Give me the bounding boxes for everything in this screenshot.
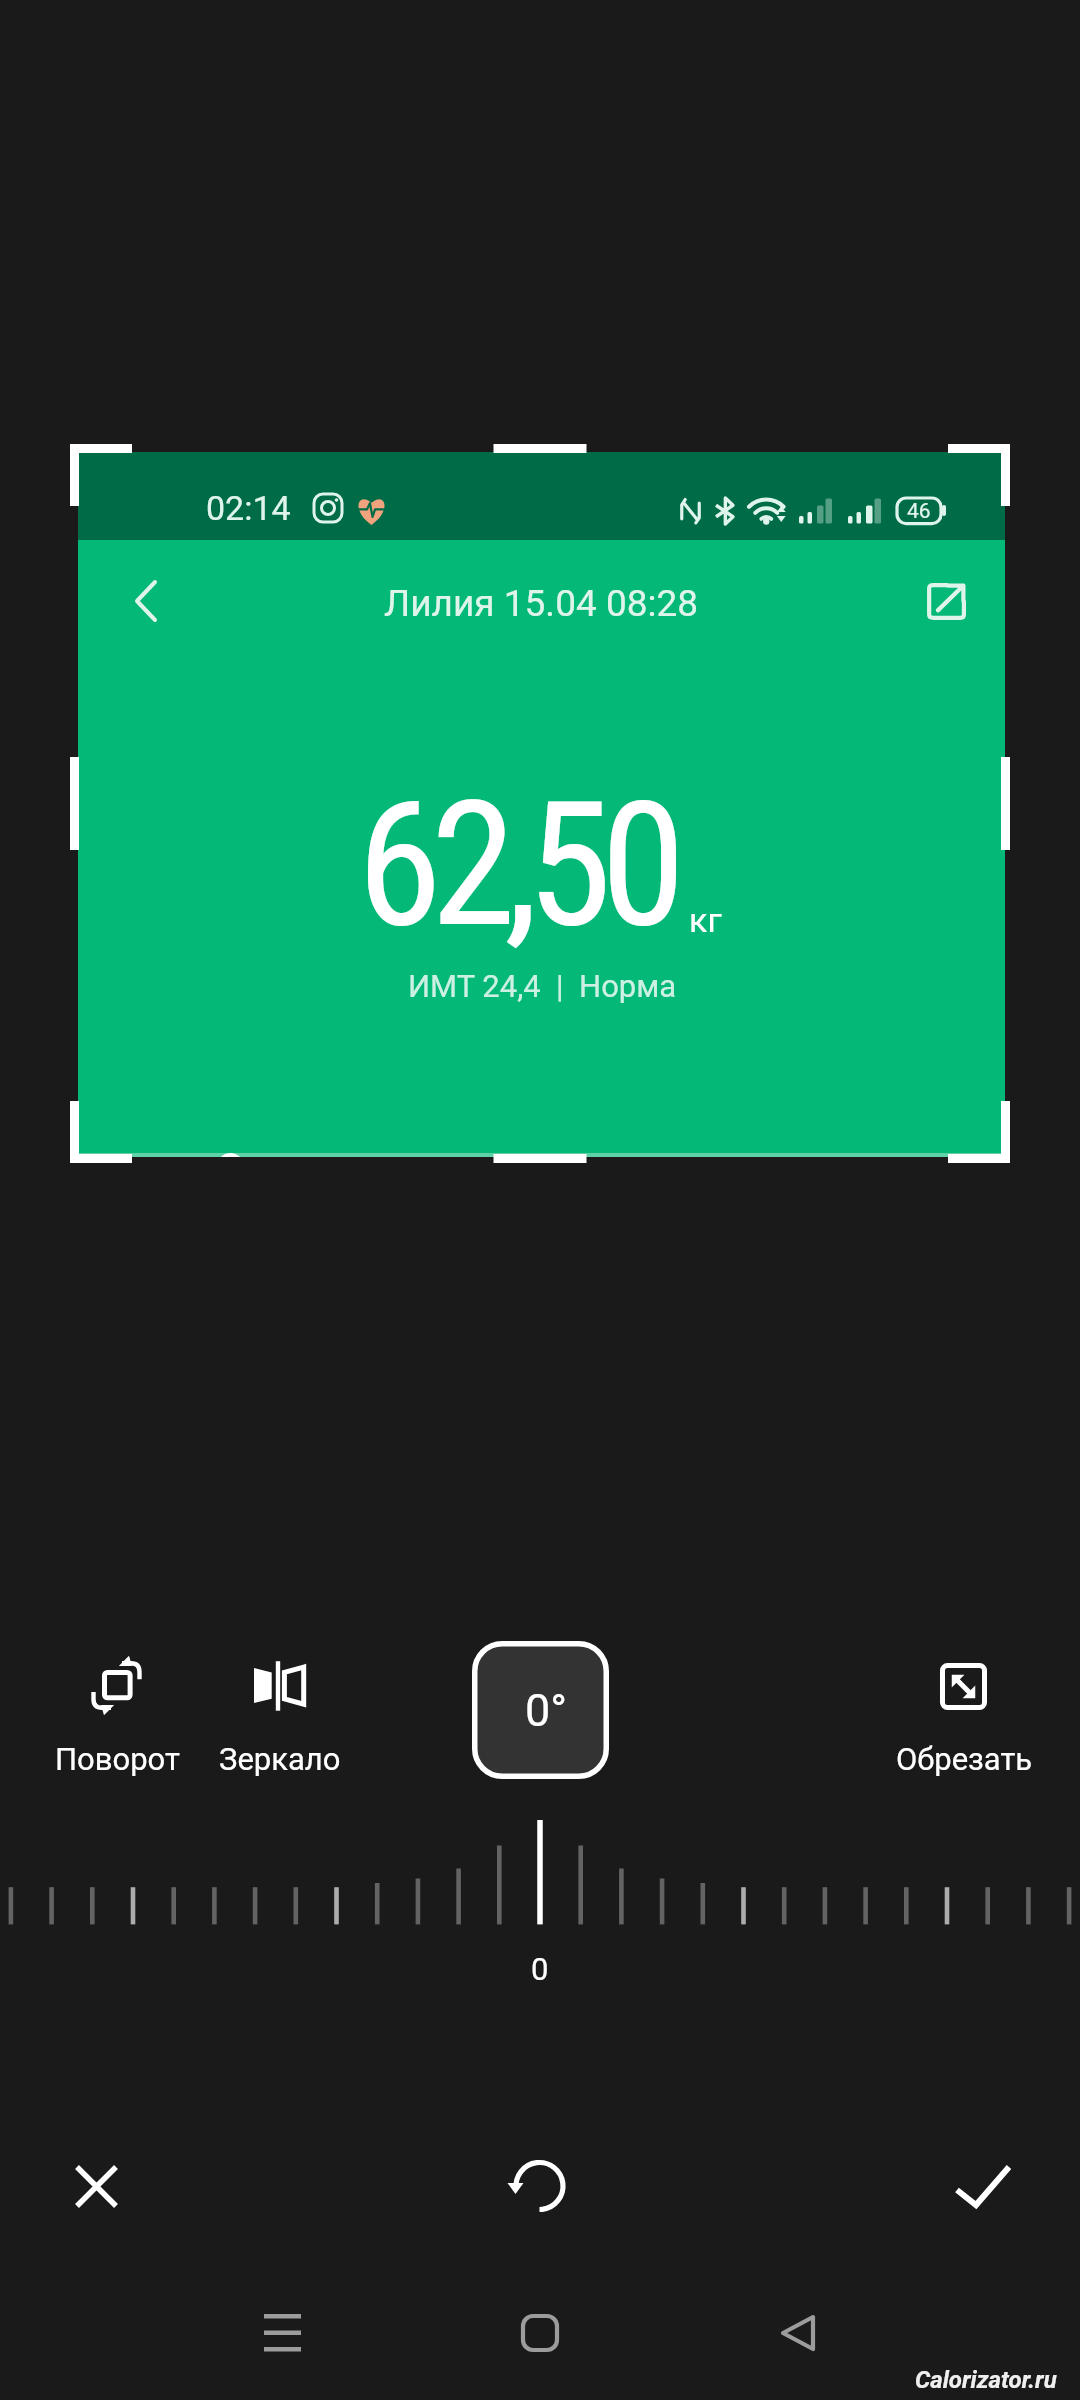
staticText: 0° — [525, 1684, 568, 1737]
button[interactable]: Поворот — [35, 1640, 200, 1788]
staticText: 02:14 — [206, 488, 291, 528]
staticText: Зеркало — [219, 1741, 341, 1777]
button[interactable]: Зеркало — [205, 1640, 355, 1788]
staticText: 62,50 — [357, 764, 675, 966]
staticText: ИМТ 24,4 | Норма — [408, 968, 677, 1004]
staticText: Лилия 15.04 08:28 — [384, 582, 699, 625]
staticText: 0 — [531, 1951, 549, 1987]
staticText: Calorizator.ru — [915, 2366, 1057, 2394]
button[interactable]: Menu — [222, 2292, 342, 2374]
button[interactable]: Back — [101, 556, 191, 646]
button[interactable]: Обрезать — [880, 1640, 1048, 1788]
button[interactable]: Reset — [478, 2126, 598, 2246]
button[interactable]: Cancel — [36, 2126, 156, 2246]
button[interactable]: Rotation angle — [472, 1641, 609, 1779]
button[interactable]: Done — [923, 2126, 1043, 2246]
staticText: кг — [689, 900, 722, 940]
button[interactable]: Home — [480, 2292, 600, 2374]
staticText: Поворот — [55, 1741, 180, 1777]
staticText: Обрезать — [896, 1741, 1033, 1777]
button[interactable]: Share — [902, 556, 992, 646]
button[interactable]: Back — [738, 2292, 858, 2374]
staticText: 46 — [907, 499, 931, 524]
